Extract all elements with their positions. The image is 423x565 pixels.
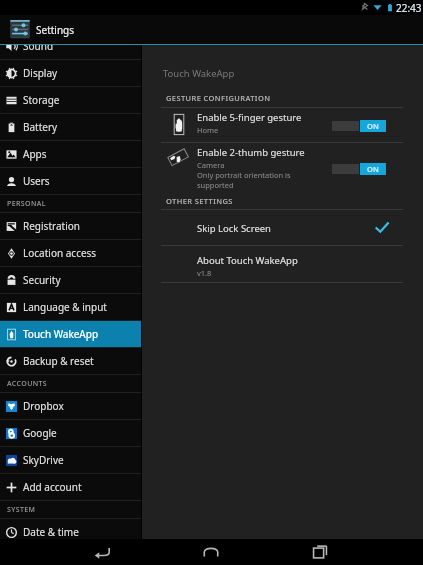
button[interactable]: Backup & reset bbox=[0, 348, 142, 374]
button[interactable]: Display bbox=[0, 60, 142, 86]
staticText: Location access bbox=[23, 246, 97, 260]
staticText: Backup & reset bbox=[23, 354, 94, 368]
staticText: Date & time bbox=[23, 525, 79, 539]
staticText: supported bbox=[197, 180, 234, 190]
staticText: Camera bbox=[197, 160, 225, 170]
staticText: Dropbox bbox=[23, 399, 64, 413]
staticText: SkyDrive bbox=[23, 453, 64, 467]
button[interactable]: Location access bbox=[0, 240, 142, 266]
button[interactable]: Battery bbox=[0, 114, 142, 140]
button[interactable]: Home bbox=[187, 539, 235, 565]
button[interactable]: Recent apps bbox=[296, 539, 344, 565]
button[interactable]: Back bbox=[78, 539, 126, 565]
button[interactable]: Google bbox=[0, 420, 142, 446]
staticText: Enable 5-finger gesture bbox=[197, 111, 302, 124]
button[interactable]: Date & time bbox=[0, 519, 142, 539]
button[interactable]: Touch WakeApp bbox=[0, 321, 142, 347]
button[interactable]: Sound bbox=[0, 45, 142, 59]
staticText: Google bbox=[23, 426, 57, 440]
staticText: PERSONAL bbox=[7, 199, 46, 209]
button[interactable]: Enable 2-thumb gesture bbox=[142, 145, 423, 195]
button[interactable]: SkyDrive bbox=[0, 447, 142, 473]
staticText: OTHER SETTINGS bbox=[166, 196, 233, 206]
button[interactable]: Add account bbox=[0, 474, 142, 500]
button[interactable]: Language & input bbox=[0, 294, 142, 320]
button[interactable]: Security bbox=[0, 267, 142, 293]
staticText: ON bbox=[367, 164, 379, 174]
staticText: SYSTEM bbox=[7, 505, 36, 515]
staticText: Only portrait orientation is bbox=[197, 170, 291, 180]
staticText: Add account bbox=[23, 480, 82, 494]
button[interactable]: Apps bbox=[0, 141, 142, 167]
staticText: Display bbox=[23, 66, 58, 80]
staticText: ON bbox=[367, 121, 379, 131]
staticText: 22:43 bbox=[396, 1, 422, 15]
staticText: Security bbox=[23, 273, 61, 287]
button[interactable]: Settings bbox=[0, 15, 423, 44]
button[interactable]: About Touch WakeApp bbox=[142, 248, 423, 282]
staticText: Home bbox=[197, 125, 219, 135]
staticText: Apps bbox=[23, 147, 47, 161]
staticText: Battery bbox=[23, 120, 58, 134]
staticText: About Touch WakeApp bbox=[197, 254, 298, 267]
staticText: Registration bbox=[23, 219, 80, 233]
button[interactable]: Dropbox bbox=[0, 393, 142, 419]
staticText: Language & input bbox=[23, 300, 107, 314]
staticText: Storage bbox=[23, 93, 60, 107]
staticText: v1.8 bbox=[197, 268, 212, 278]
staticText: Touch WakeApp bbox=[23, 327, 99, 341]
button[interactable]: Skip Lock Screen bbox=[142, 211, 423, 245]
staticText: Touch WakeApp bbox=[163, 67, 235, 80]
button[interactable]: Storage bbox=[0, 87, 142, 113]
staticText: Sound bbox=[23, 45, 54, 53]
button[interactable]: Enable 5-finger gesture bbox=[142, 110, 423, 143]
staticText: ACCOUNTS bbox=[7, 379, 48, 389]
button[interactable]: Users bbox=[0, 168, 142, 194]
staticText: Settings bbox=[36, 23, 75, 37]
button[interactable]: Registration bbox=[0, 213, 142, 239]
staticText: Users bbox=[23, 174, 50, 188]
staticText: Skip Lock Screen bbox=[197, 222, 271, 235]
staticText: Enable 2-thumb gesture bbox=[197, 146, 305, 159]
staticText: GESTURE CONFIGURATION bbox=[166, 93, 271, 103]
